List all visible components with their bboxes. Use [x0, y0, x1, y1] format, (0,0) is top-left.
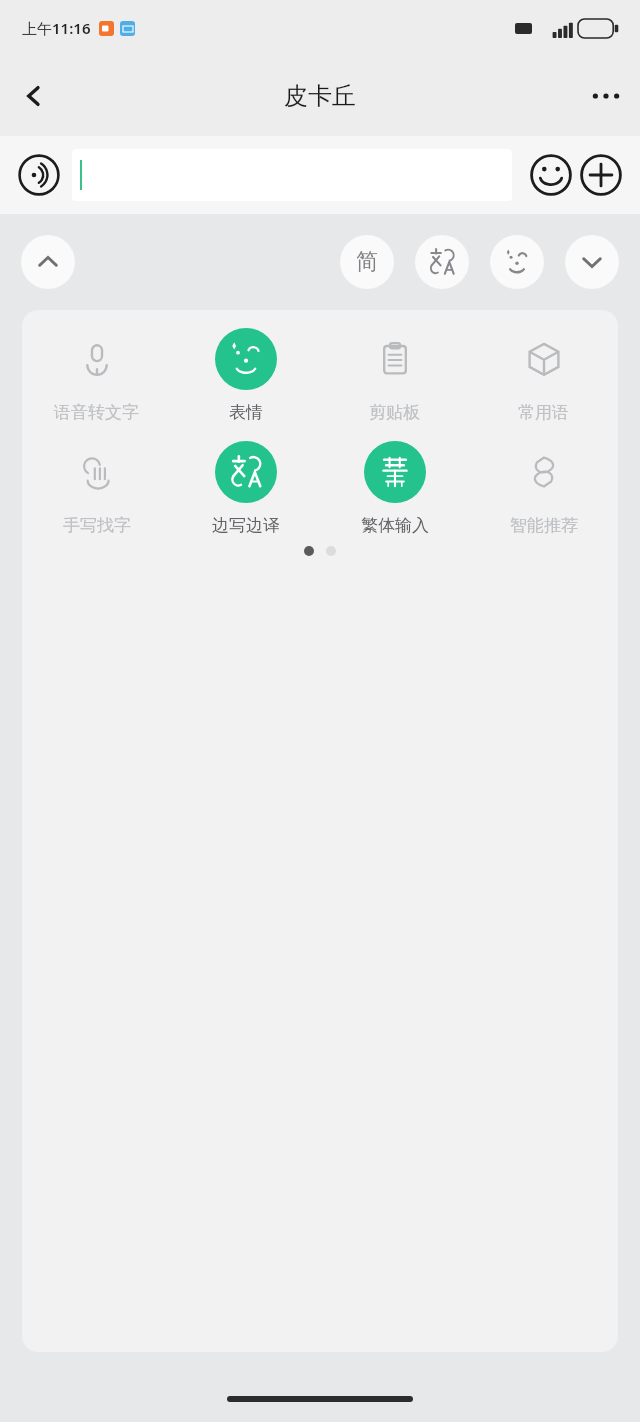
button[interactable]: Translate — [415, 235, 469, 289]
staticText: 语音转文字 — [54, 402, 139, 423]
button[interactable]: Hide keyboard — [565, 235, 619, 289]
staticText: 常用语 — [518, 402, 569, 423]
staticText: 边写边译 — [212, 515, 280, 536]
button[interactable]: 语音转文字 — [22, 328, 171, 423]
staticText: 上午11:16 — [22, 18, 91, 38]
button[interactable]: Back — [6, 68, 62, 124]
button[interactable]: Simplified Chinese — [340, 235, 394, 289]
staticText: 繁体输入 — [361, 515, 429, 536]
button[interactable]: Voice input — [14, 150, 64, 200]
button[interactable]: 繁体输入 — [320, 441, 469, 536]
staticText: 皮卡丘 — [284, 81, 356, 111]
staticText: 简 — [356, 248, 378, 276]
button[interactable]: More functions — [576, 150, 626, 200]
button[interactable]: 剪贴板 — [320, 328, 469, 423]
staticText: 表情 — [229, 402, 263, 423]
button[interactable]: Emoji — [526, 150, 576, 200]
button[interactable]: 常用语 — [469, 328, 618, 423]
button[interactable]: 表情 — [171, 328, 320, 423]
staticText: 剪贴板 — [369, 402, 420, 423]
staticText: 智能推荐 — [510, 515, 578, 536]
button[interactable]: 智能推荐 — [469, 441, 618, 536]
button[interactable]: More options — [578, 68, 634, 124]
button[interactable]: 手写找字 — [22, 441, 171, 536]
button[interactable] — [72, 149, 512, 201]
button[interactable]: 边写边译 — [171, 441, 320, 536]
button[interactable]: Emoji keyboard — [490, 235, 544, 289]
staticText: 手写找字 — [63, 515, 131, 536]
button[interactable]: Collapse keyboard — [21, 235, 75, 289]
